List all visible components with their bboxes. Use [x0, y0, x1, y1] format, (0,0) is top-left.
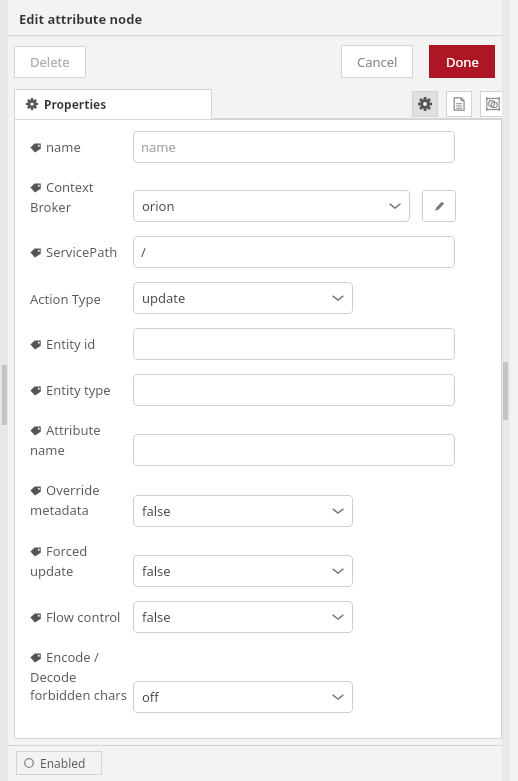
staticText: / — [141, 243, 146, 261]
staticText: metadata — [30, 501, 89, 519]
staticText: Encode / — [46, 648, 99, 666]
button[interactable]: / — [133, 236, 455, 268]
staticText: Edit attribute node — [19, 10, 143, 28]
button[interactable]: Done — [429, 45, 495, 78]
staticText: Override — [46, 481, 100, 499]
staticText: Properties — [44, 96, 107, 112]
staticText: name — [46, 138, 81, 156]
button[interactable]: false — [133, 555, 353, 587]
button[interactable]: name — [133, 131, 455, 163]
staticText: Delete — [30, 53, 70, 71]
staticText: false — [142, 608, 171, 626]
button[interactable]: Appearance — [480, 91, 506, 117]
staticText: ServicePath — [46, 243, 118, 261]
staticText: orion — [142, 197, 175, 215]
staticText: update — [142, 289, 186, 307]
staticText: Decode — [30, 668, 77, 686]
staticText: Cancel — [357, 53, 398, 71]
staticText: Broker — [30, 198, 72, 216]
staticText: off — [142, 688, 159, 706]
staticText: false — [142, 562, 171, 580]
staticText: Done — [446, 53, 479, 71]
staticText: update — [30, 562, 74, 580]
button[interactable]: Edit context broker — [422, 190, 456, 222]
button[interactable]: Delete — [14, 46, 86, 78]
staticText: Context — [46, 178, 94, 196]
button[interactable]: Node settings — [412, 91, 438, 117]
staticText: Attribute — [46, 421, 101, 439]
button[interactable] — [133, 328, 455, 360]
staticText: Action Type — [30, 290, 101, 308]
staticText: Enabled — [40, 755, 86, 771]
button[interactable]: update — [133, 282, 353, 314]
button[interactable]: false — [133, 601, 353, 633]
staticText: Flow control — [46, 608, 121, 626]
button[interactable]: off — [133, 681, 353, 713]
staticText: Forced — [46, 542, 88, 560]
button[interactable] — [133, 434, 455, 466]
staticText: name — [30, 441, 65, 459]
button[interactable]: Enabled — [16, 751, 102, 775]
button[interactable]: Description — [446, 91, 472, 117]
button[interactable] — [133, 374, 455, 406]
staticText: name — [141, 138, 176, 156]
staticText: Entity type — [46, 381, 111, 399]
button[interactable]: orion — [133, 190, 410, 222]
staticText: forbidden chars — [30, 686, 127, 704]
button[interactable]: false — [133, 495, 353, 527]
button[interactable]: Properties — [14, 89, 212, 119]
staticText: Entity id — [46, 335, 96, 353]
staticText: false — [142, 502, 171, 520]
button[interactable]: Cancel — [341, 45, 413, 78]
